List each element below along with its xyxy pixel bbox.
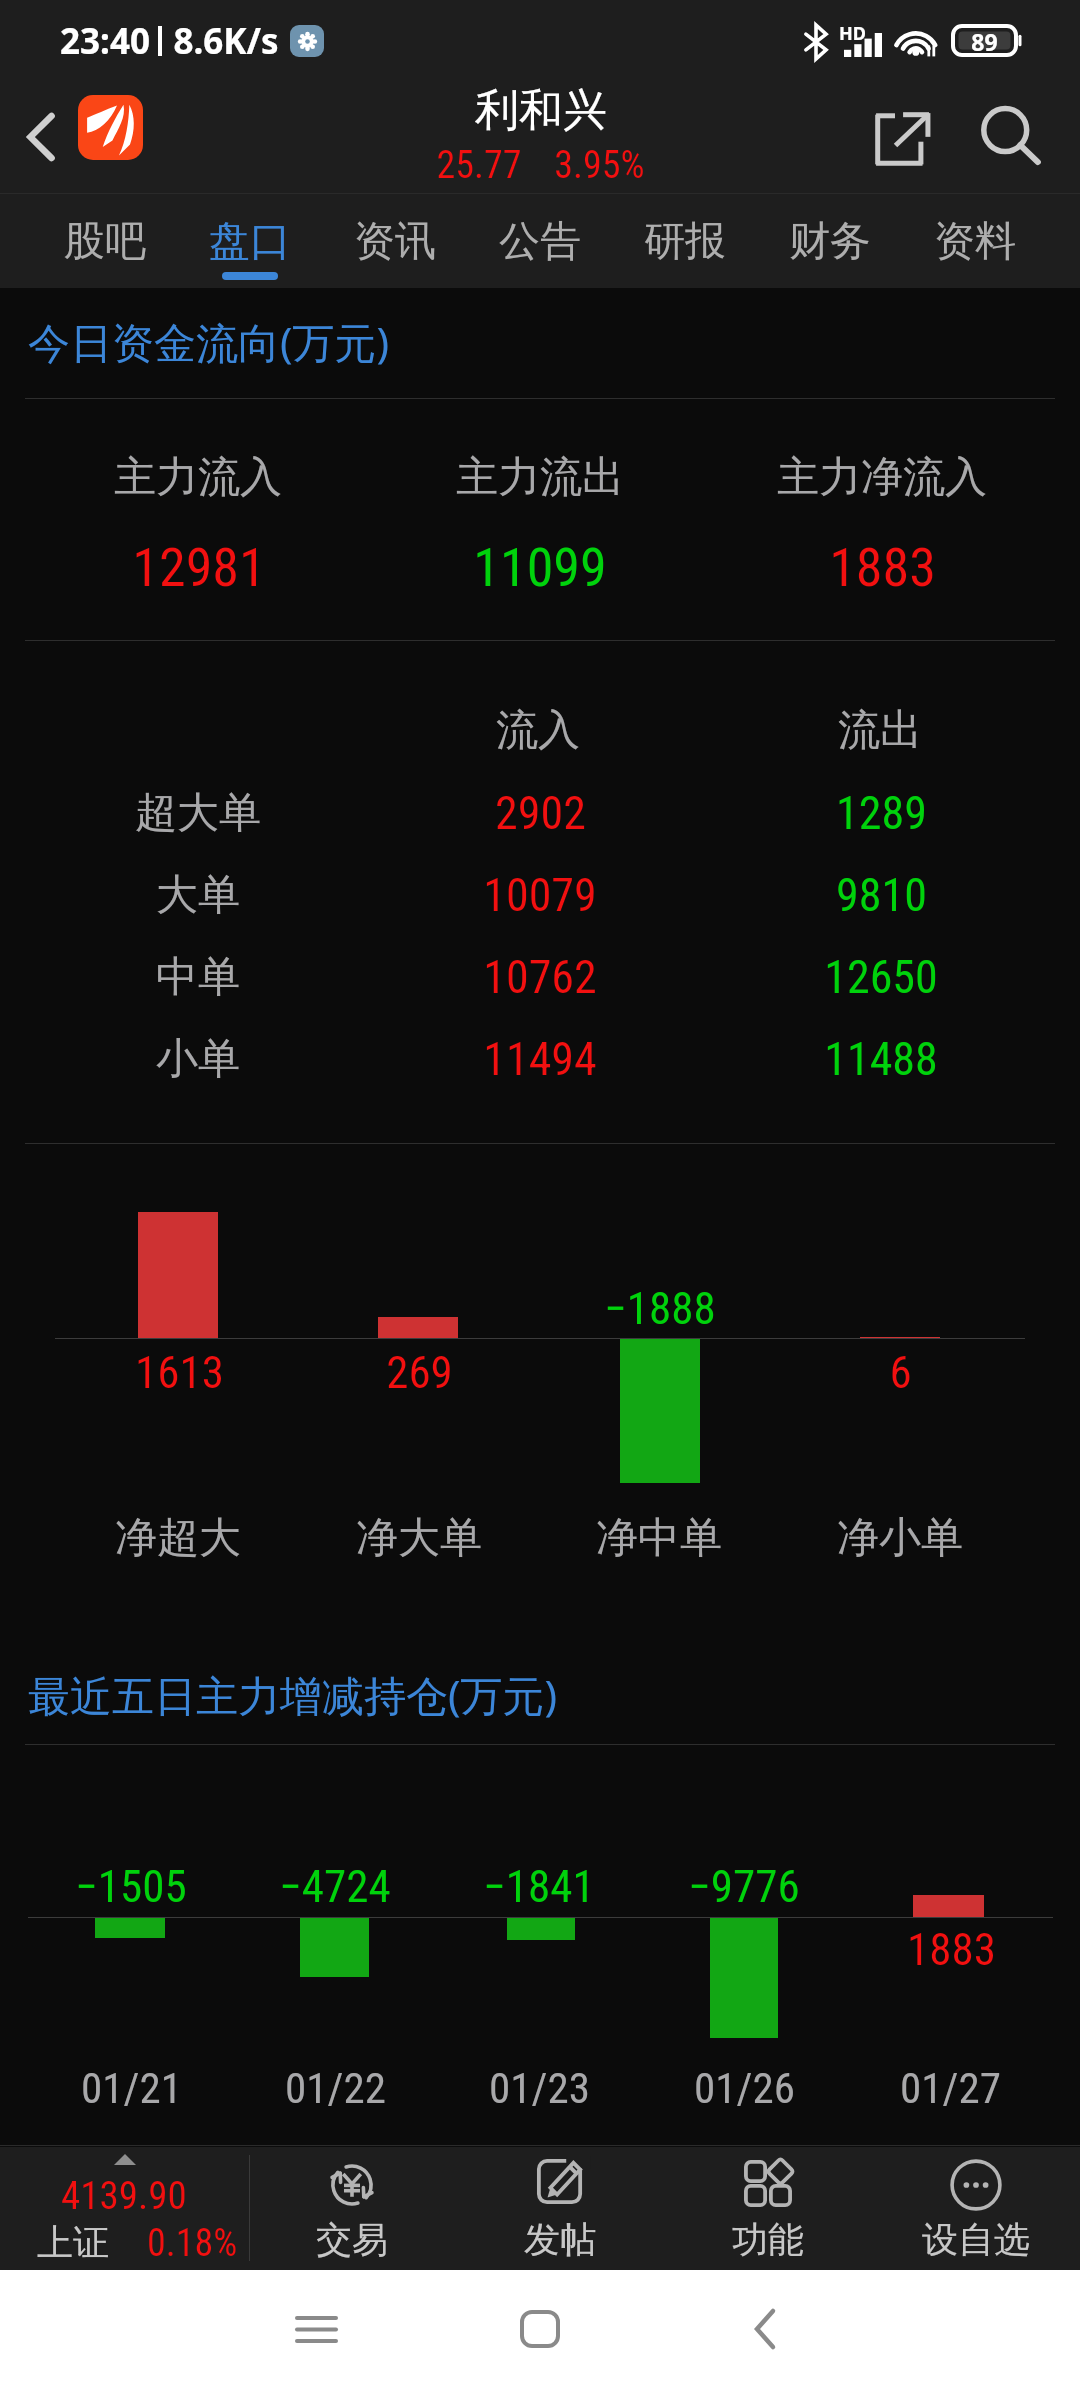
staticText: 功能 [732,2217,804,2262]
staticText: 今日资金流向(万元) [28,313,390,370]
staticText: 1613 [135,1346,224,1399]
staticText: 财务 [789,216,871,268]
staticText: 0.18% [147,2221,238,2266]
staticText: 269 [386,1346,453,1399]
staticText: 超大单 [135,787,261,840]
button[interactable]: 功能 [668,2147,868,2270]
staticText: 资讯 [354,216,436,268]
button[interactable]: 股吧 [33,194,177,288]
staticText: 净超大 [115,1512,241,1565]
staticText: 23:40 [60,17,150,65]
staticText: 89 [971,26,998,55]
staticText: 10762 [483,950,597,1004]
staticText: 12650 [824,950,938,1004]
staticText: −1888 [604,1282,716,1335]
button[interactable]: 4139.90 [0,2147,249,2270]
staticText: 流入 [496,704,580,757]
staticText: −9776 [688,1860,800,1913]
staticText: 11099 [473,536,607,599]
button[interactable]: Home [480,2264,600,2394]
staticText: 3.95% [554,143,645,188]
staticText: 01/26 [694,2063,795,2113]
staticText: 交易 [316,2217,388,2262]
staticText: 01/22 [285,2063,386,2113]
staticText: 1883 [907,1923,996,1976]
button[interactable]: Share [856,84,948,194]
button[interactable]: 公告 [468,194,612,288]
staticText: 01/27 [900,2063,1001,2113]
staticText: 01/23 [489,2063,590,2113]
staticText: 研报 [644,216,726,268]
staticText: 净小单 [837,1512,963,1565]
staticText: 盘口 [209,216,291,268]
button[interactable]: Back [0,82,82,192]
button[interactable]: Back [705,2264,825,2394]
staticText: 10079 [483,868,597,922]
button[interactable]: 盘口 [178,194,322,288]
staticText: 资料 [934,216,1016,268]
staticText: 股吧 [64,216,146,268]
staticText: 12981 [132,536,266,599]
staticText: 中单 [156,951,240,1004]
staticText: 净大单 [356,1512,482,1565]
button[interactable]: Search [958,84,1064,194]
button[interactable]: 交易 [252,2147,452,2270]
button[interactable]: 财务 [758,194,902,288]
staticText: −4724 [279,1860,391,1913]
staticText: 大单 [156,869,240,922]
staticText: 流出 [838,704,922,757]
staticText: 11488 [824,1032,938,1086]
button[interactable]: 研报 [613,194,757,288]
staticText: 利和兴 [475,83,607,138]
button[interactable]: 发帖 [460,2147,660,2270]
staticText: 11494 [483,1032,597,1086]
staticText: −1841 [483,1860,595,1913]
button[interactable]: 资料 [903,194,1047,288]
button[interactable]: 资讯 [323,194,467,288]
button[interactable]: Recents [256,2264,376,2394]
staticText: 4139.90 [61,2173,187,2219]
staticText: 设自选 [922,2217,1030,2262]
staticText: −1505 [75,1860,187,1913]
staticText: 小单 [156,1033,240,1086]
staticText: 公告 [499,216,581,268]
staticText: 主力流入 [114,451,282,504]
staticText: 净中单 [596,1512,722,1565]
staticText: 2902 [495,786,586,840]
staticText: HD [839,21,866,46]
button[interactable]: 设自选 [876,2147,1076,2270]
staticText: 主力净流入 [777,451,987,504]
staticText: 01/21 [81,2063,182,2113]
staticText: 25.77 [436,143,522,188]
staticText: 主力流出 [456,451,624,504]
staticText: 1289 [836,786,927,840]
button[interactable]: App home [78,95,143,160]
staticText: 9810 [836,868,927,922]
staticText: 8.6K/s [173,17,279,65]
staticText: 6 [889,1346,912,1399]
staticText: 上证 [37,2220,109,2265]
staticText: 1883 [829,536,936,599]
staticText: 发帖 [524,2217,596,2262]
staticText: 最近五日主力增减持仓(万元) [28,1666,558,1723]
